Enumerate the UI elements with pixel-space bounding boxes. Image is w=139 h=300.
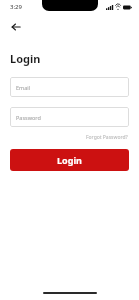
staticText: Email xyxy=(16,84,31,91)
button[interactable]: Email xyxy=(10,77,129,97)
staticText: Password xyxy=(16,114,41,121)
staticText: Login xyxy=(57,154,82,166)
button[interactable]: Back xyxy=(6,17,26,37)
staticText: 3:29 xyxy=(10,3,22,11)
staticText: Login xyxy=(10,51,41,66)
button[interactable]: Login xyxy=(10,149,129,171)
button[interactable]: Password xyxy=(10,107,129,127)
button[interactable]: Forgot Password? xyxy=(85,133,129,142)
